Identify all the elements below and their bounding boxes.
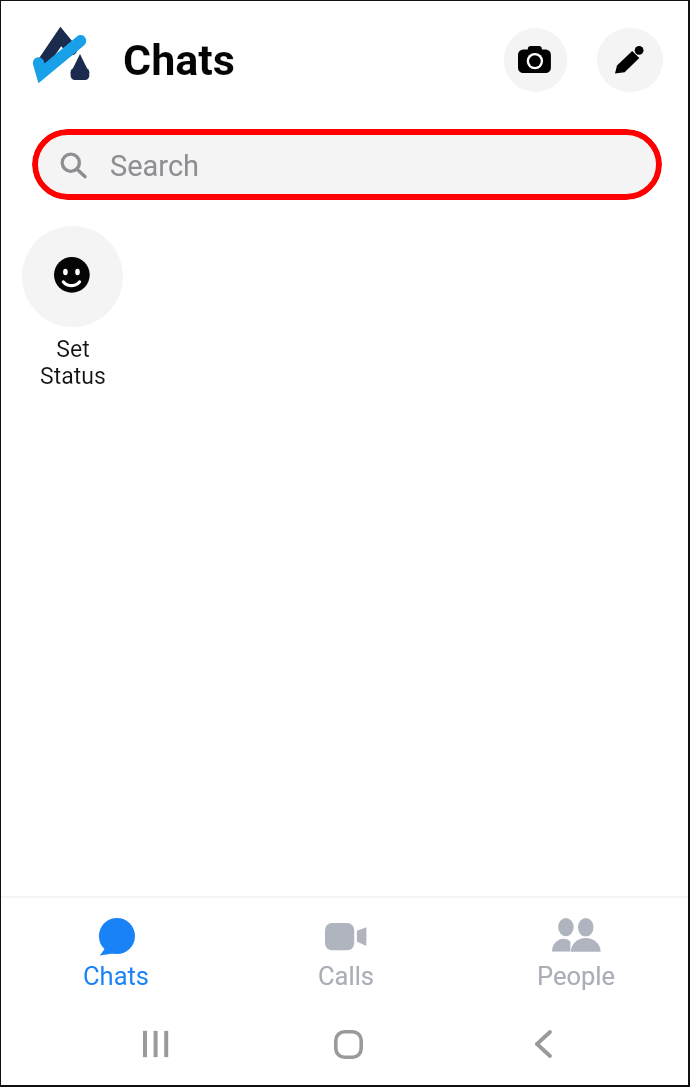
staticText: People — [537, 961, 616, 991]
button[interactable]: Calls — [231, 898, 461, 999]
button[interactable]: Home — [309, 1007, 387, 1081]
button[interactable]: Camera — [504, 28, 567, 92]
staticText: Chats — [83, 961, 150, 991]
button[interactable]: Set Status — [22, 226, 123, 390]
button[interactable]: New message — [597, 28, 663, 92]
staticText: Set Status — [40, 336, 106, 390]
button[interactable]: People — [461, 898, 690, 999]
staticText: Chats — [123, 35, 235, 85]
staticText: Search — [110, 149, 200, 183]
button[interactable]: Chats — [1, 898, 231, 999]
button[interactable]: Back — [504, 1007, 582, 1081]
button[interactable]: Recents — [118, 1007, 196, 1081]
staticText: Calls — [318, 961, 375, 991]
button[interactable]: Search — [32, 129, 662, 200]
